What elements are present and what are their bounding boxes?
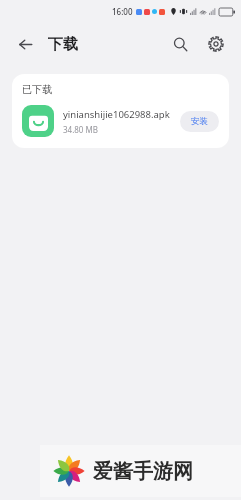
staticText: 安装 [191,116,208,127]
staticText: 34.80 MB [63,124,98,135]
button[interactable]: Settings [201,29,231,59]
button[interactable]: Back [10,29,40,59]
staticText: 爱酱手游网 [93,459,193,484]
button[interactable]: Search [165,29,195,59]
staticText: 下载 [48,35,78,54]
staticText: 16:00 [112,6,133,17]
button[interactable]: yinianshijie1062988.apk [22,105,219,137]
staticText: yinianshijie1062988.apk [63,108,170,121]
staticText: 已下载 [22,83,52,96]
button[interactable]: 安装 [180,111,219,132]
